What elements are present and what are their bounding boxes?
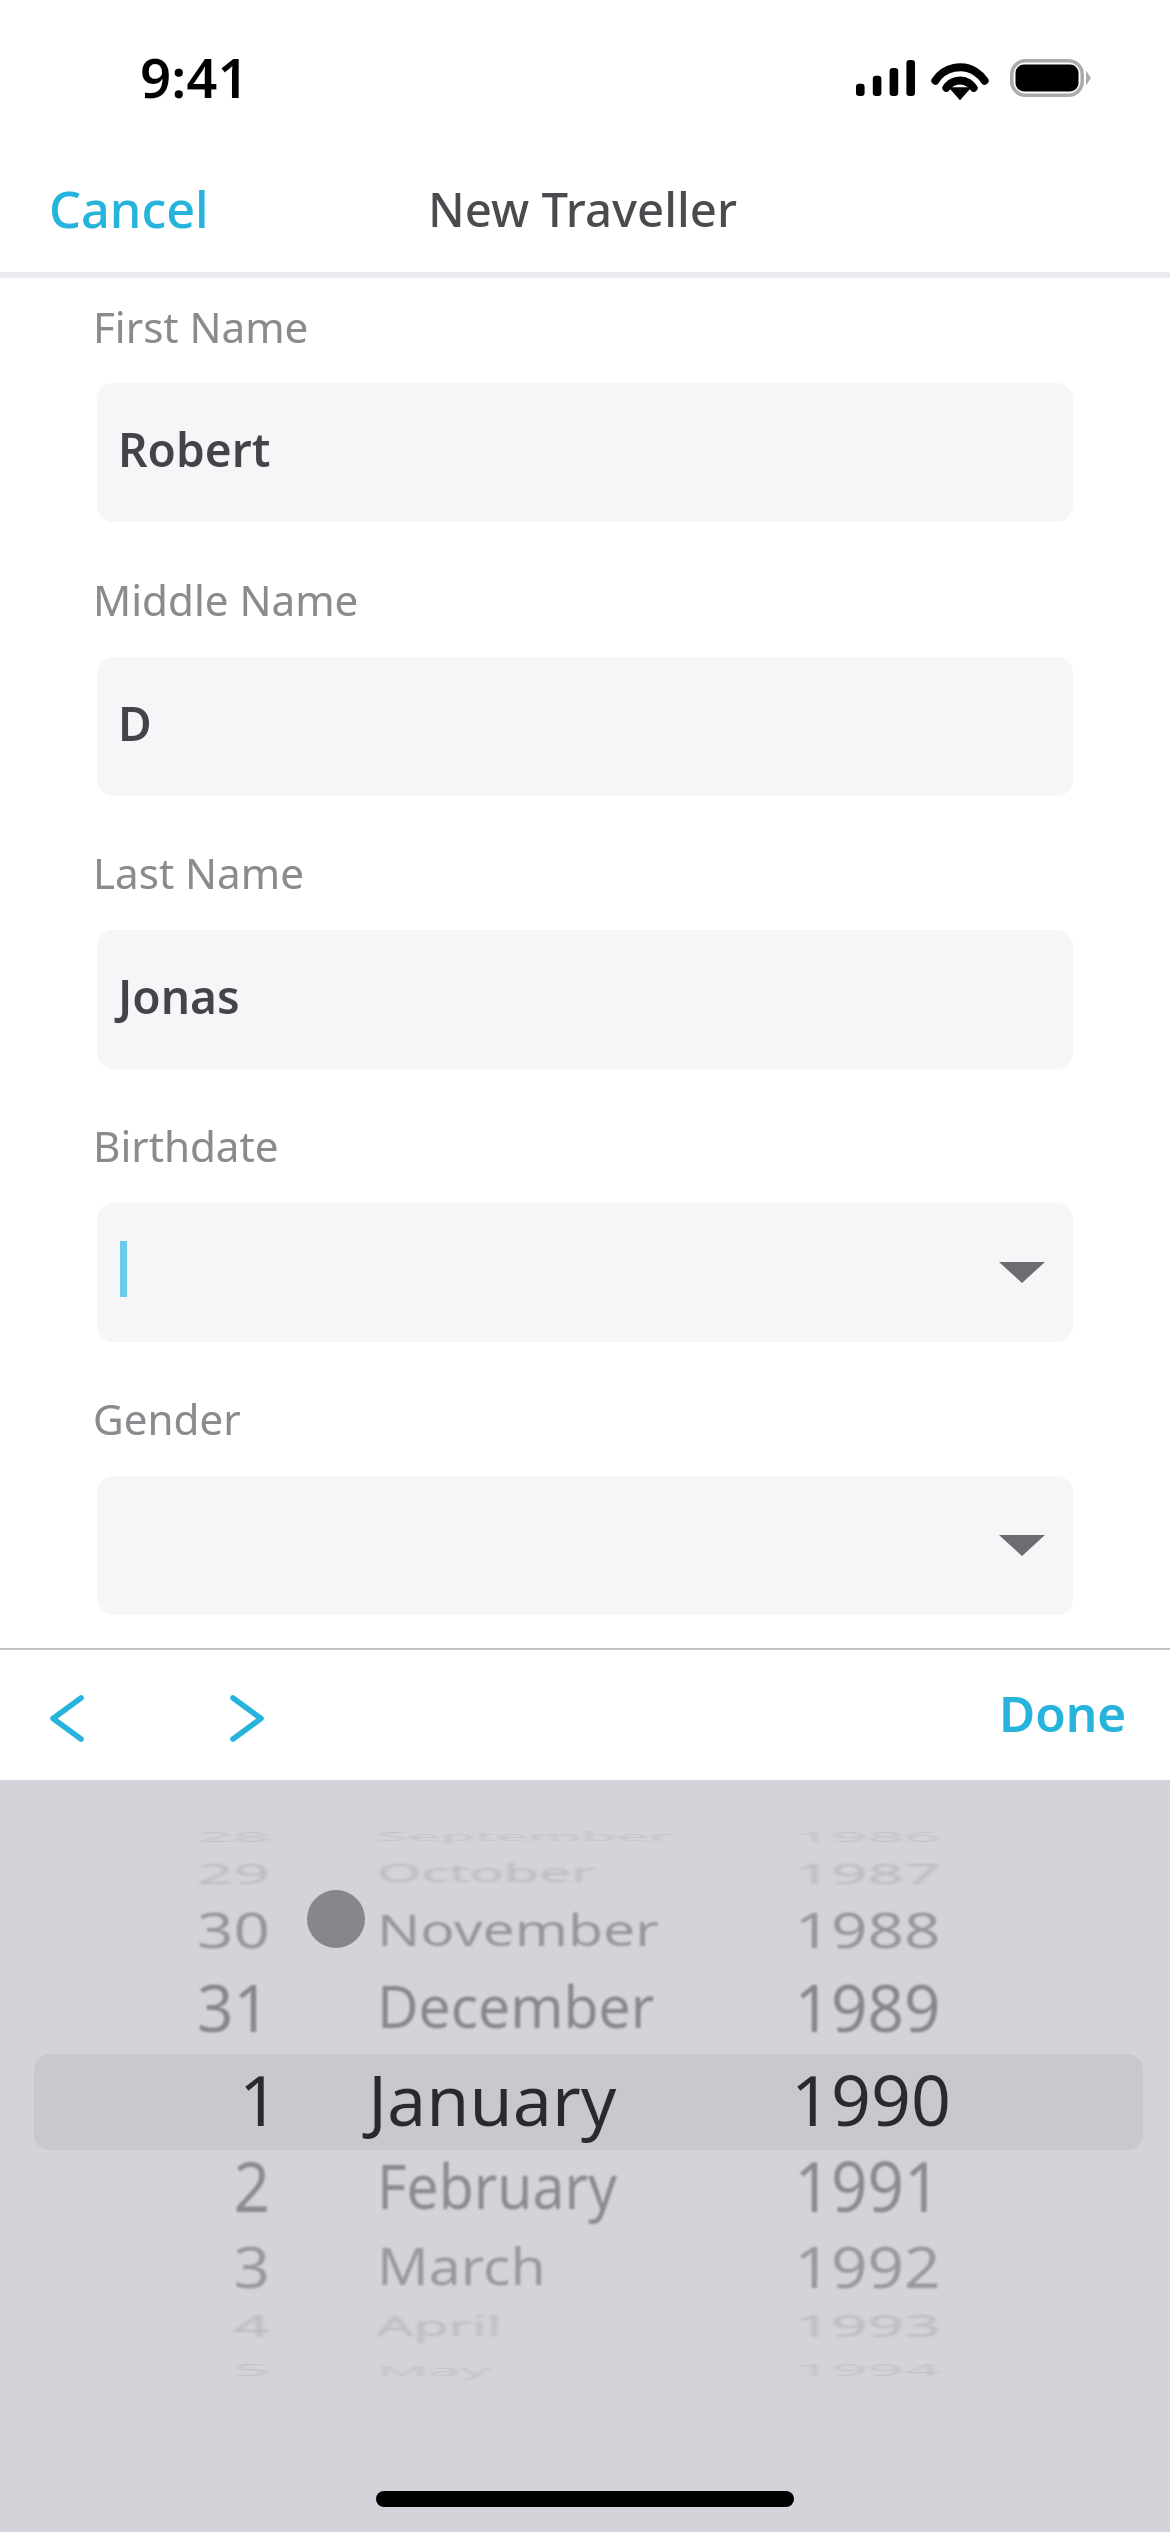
staticText: September (377, 1827, 673, 1845)
staticText: 5 (233, 2359, 270, 2381)
staticText: 1989 (794, 1962, 941, 2051)
staticText: 1 (239, 2051, 279, 2146)
staticText: 1988 (794, 1896, 941, 1962)
button[interactable]: Robert (97, 383, 1073, 522)
staticText: Cancel (49, 174, 209, 242)
staticText: January (368, 2051, 617, 2146)
staticText: Birthdate (93, 1117, 279, 1174)
staticText: October (377, 1856, 595, 1890)
staticText: 30 (196, 1896, 270, 1962)
staticText: Jonas (118, 965, 240, 1028)
staticText: 1990 (791, 2051, 951, 2146)
button[interactable]: Day wheel (0, 1830, 330, 2400)
staticText: D (118, 692, 152, 755)
staticText: Gender (93, 1390, 241, 1447)
button[interactable] (97, 1203, 1073, 1342)
staticText: 1993 (794, 2304, 941, 2346)
staticText: 9:41 (140, 40, 249, 114)
staticText: November (377, 1899, 659, 1959)
staticText: Done (999, 1679, 1127, 1746)
staticText: 28 (196, 1826, 270, 1846)
button[interactable]: Previous field (1, 1652, 133, 1784)
button[interactable]: D (97, 657, 1073, 796)
button[interactable] (97, 1476, 1073, 1615)
staticText: May (377, 2360, 490, 2380)
staticText: 1987 (794, 1854, 941, 1892)
staticText: 1992 (794, 2228, 941, 2305)
staticText: First Name (93, 298, 309, 355)
staticText: Middle Name (93, 571, 359, 628)
button[interactable]: Cancel (0, 156, 264, 260)
button[interactable]: Month wheel (330, 1830, 840, 2400)
button[interactable]: Jonas (97, 930, 1073, 1069)
staticText: 1991 (794, 2138, 941, 2233)
staticText: 1986 (794, 1826, 941, 1846)
staticText: 1994 (794, 2359, 941, 2381)
button[interactable]: Next field (181, 1652, 313, 1784)
staticText: Robert (118, 418, 271, 481)
staticText: March (377, 2232, 546, 2300)
staticText: 4 (233, 2304, 270, 2346)
staticText: 2 (233, 2138, 270, 2233)
staticText: February (377, 2142, 618, 2228)
staticText: 31 (196, 1962, 270, 2051)
staticText: Last Name (93, 844, 304, 901)
staticText: New Traveller (428, 176, 738, 241)
button[interactable]: Done (951, 1652, 1170, 1773)
staticText: 3 (233, 2228, 270, 2305)
button[interactable]: Year wheel (840, 1830, 1170, 2400)
staticText: December (377, 1966, 655, 2046)
staticText: 29 (196, 1854, 270, 1892)
staticText: April (377, 2306, 502, 2344)
